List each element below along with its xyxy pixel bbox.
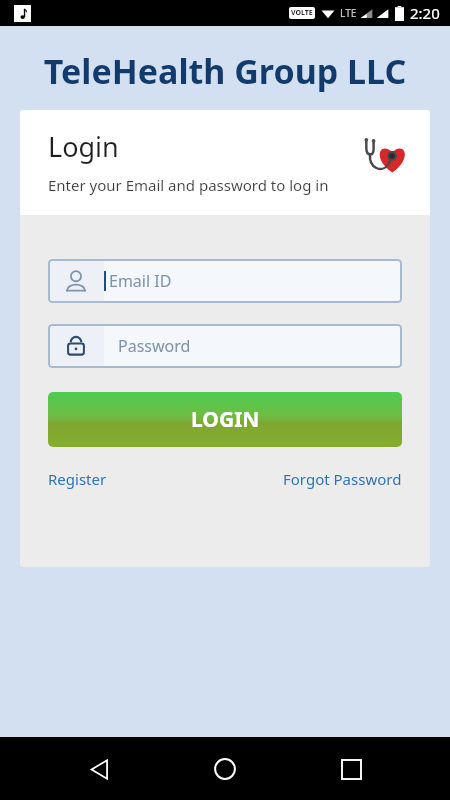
button[interactable]: Back [72,742,126,796]
staticText: VOLTE [291,8,313,18]
staticText: LTE [340,6,357,20]
button[interactable]: Forgot Password [283,469,402,489]
staticText: TeleHealth Group LLC [28,48,422,94]
button[interactable]: Register [48,469,107,489]
staticText: LOGIN [191,405,260,434]
button[interactable]: Password [48,324,402,368]
button[interactable]: Home [198,742,252,796]
button[interactable]: Email ID [48,259,402,303]
staticText: Email ID [109,270,172,292]
other: Password [64,334,88,358]
other: TeleHealth logo [358,132,410,180]
staticText: Enter your Email and password to log in [48,175,329,195]
button[interactable]: LOGIN [48,392,402,447]
staticText: Password [118,335,191,357]
staticText: Login [48,128,119,165]
staticText: 2:20 [410,3,440,23]
button[interactable]: Recent apps [324,742,378,796]
other: Email ID [64,269,88,293]
